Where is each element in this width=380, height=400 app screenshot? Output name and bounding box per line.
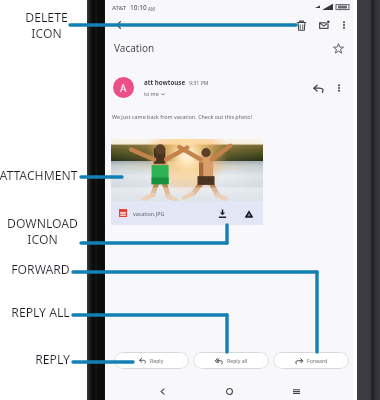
button[interactable]: Star — [329, 39, 347, 57]
staticText: REPLY — [35, 351, 70, 368]
button[interactable]: Forward — [273, 352, 349, 369]
staticText: AM — [148, 6, 156, 12]
staticText: 10:10 — [130, 3, 147, 12]
staticText: A — [120, 81, 127, 95]
button[interactable]: Back — [109, 15, 129, 35]
staticText: Forward — [307, 357, 328, 364]
button[interactable]: Back — [152, 381, 172, 400]
button[interactable]: Download — [216, 207, 229, 220]
button[interactable]: Home — [219, 381, 239, 400]
staticText: Reply all — [227, 357, 248, 364]
staticText: We just came back from vacation. Check o… — [112, 113, 252, 120]
button[interactable]: Delete — [292, 16, 310, 34]
button[interactable]: Save to Drive — [242, 207, 255, 220]
button[interactable]: Recent apps — [286, 381, 306, 400]
staticText: att howtouse — [144, 78, 186, 86]
staticText: vacation.JPG — [133, 210, 165, 217]
staticText: ATTACHMENT — [0, 167, 78, 184]
staticText: REPLY ALL — [11, 304, 70, 321]
staticText: 9:31 PM — [189, 79, 209, 86]
button[interactable]: More options — [335, 16, 353, 34]
button[interactable]: Reply — [114, 352, 189, 369]
button[interactable]: Reply all — [193, 352, 269, 369]
button[interactable]: Mark as unread — [315, 16, 333, 34]
button[interactable]: Reply — [309, 79, 327, 97]
staticText: DELETE ICON — [25, 9, 68, 41]
staticText: FORWARD — [11, 261, 70, 278]
staticText: to me — [144, 90, 159, 97]
staticText: Reply — [150, 357, 164, 364]
button[interactable]: More options — [331, 80, 347, 96]
staticText: Vacation — [114, 41, 155, 55]
staticText: DOWNLOAD ICON — [7, 215, 78, 247]
staticText: AT&T — [112, 4, 127, 12]
